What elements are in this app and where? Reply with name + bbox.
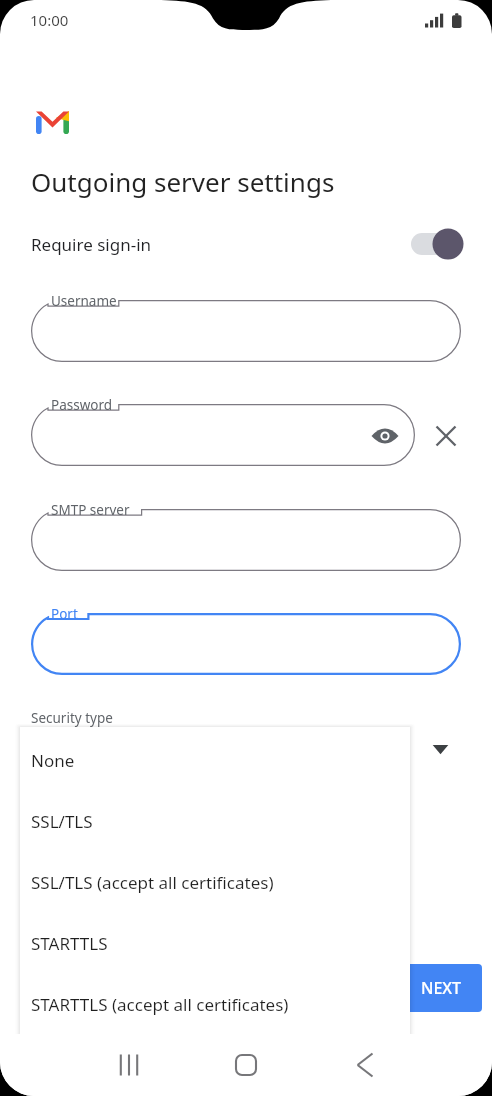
other: Gmail <box>36 111 69 134</box>
button[interactable]: Port <box>31 613 461 675</box>
button[interactable]: Username <box>31 300 461 362</box>
staticText: Require sign-in <box>31 233 152 256</box>
button[interactable]: Expand security type <box>424 734 457 762</box>
button[interactable]: STARTTLS <box>20 910 410 971</box>
button[interactable]: Recent apps <box>101 1037 157 1093</box>
button[interactable]: Require sign-in <box>0 219 492 269</box>
staticText: SSL/TLS (accept all certificates) <box>31 871 274 894</box>
staticText: Password <box>51 396 113 414</box>
staticText: Username <box>51 292 117 310</box>
staticText: STARTTLS (accept all certificates) <box>31 993 289 1016</box>
button[interactable]: STARTTLS (accept all certificates) <box>20 971 410 1032</box>
staticText: SSL/TLS <box>31 810 93 833</box>
staticText: Outgoing server settings <box>31 164 335 199</box>
button[interactable]: SSL/TLS <box>20 788 410 849</box>
staticText: 10:00 <box>30 10 69 30</box>
button[interactable]: SSL/TLS (accept all certificates) <box>20 849 410 910</box>
button[interactable]: Back <box>336 1037 392 1093</box>
staticText: STARTTLS <box>31 932 108 955</box>
staticText: SMTP server <box>51 501 130 519</box>
button[interactable]: Show password <box>367 418 403 454</box>
button[interactable]: NEXT <box>400 964 482 1012</box>
staticText: Port <box>51 605 78 623</box>
button[interactable]: Password <box>31 404 415 466</box>
staticText: Security type <box>31 709 113 727</box>
staticText: NEXT <box>421 977 462 999</box>
button[interactable]: Home <box>218 1037 274 1093</box>
button[interactable]: SMTP server <box>31 509 461 571</box>
button[interactable]: None <box>20 727 410 788</box>
staticText: None <box>31 749 75 772</box>
button[interactable]: Clear <box>427 417 465 455</box>
